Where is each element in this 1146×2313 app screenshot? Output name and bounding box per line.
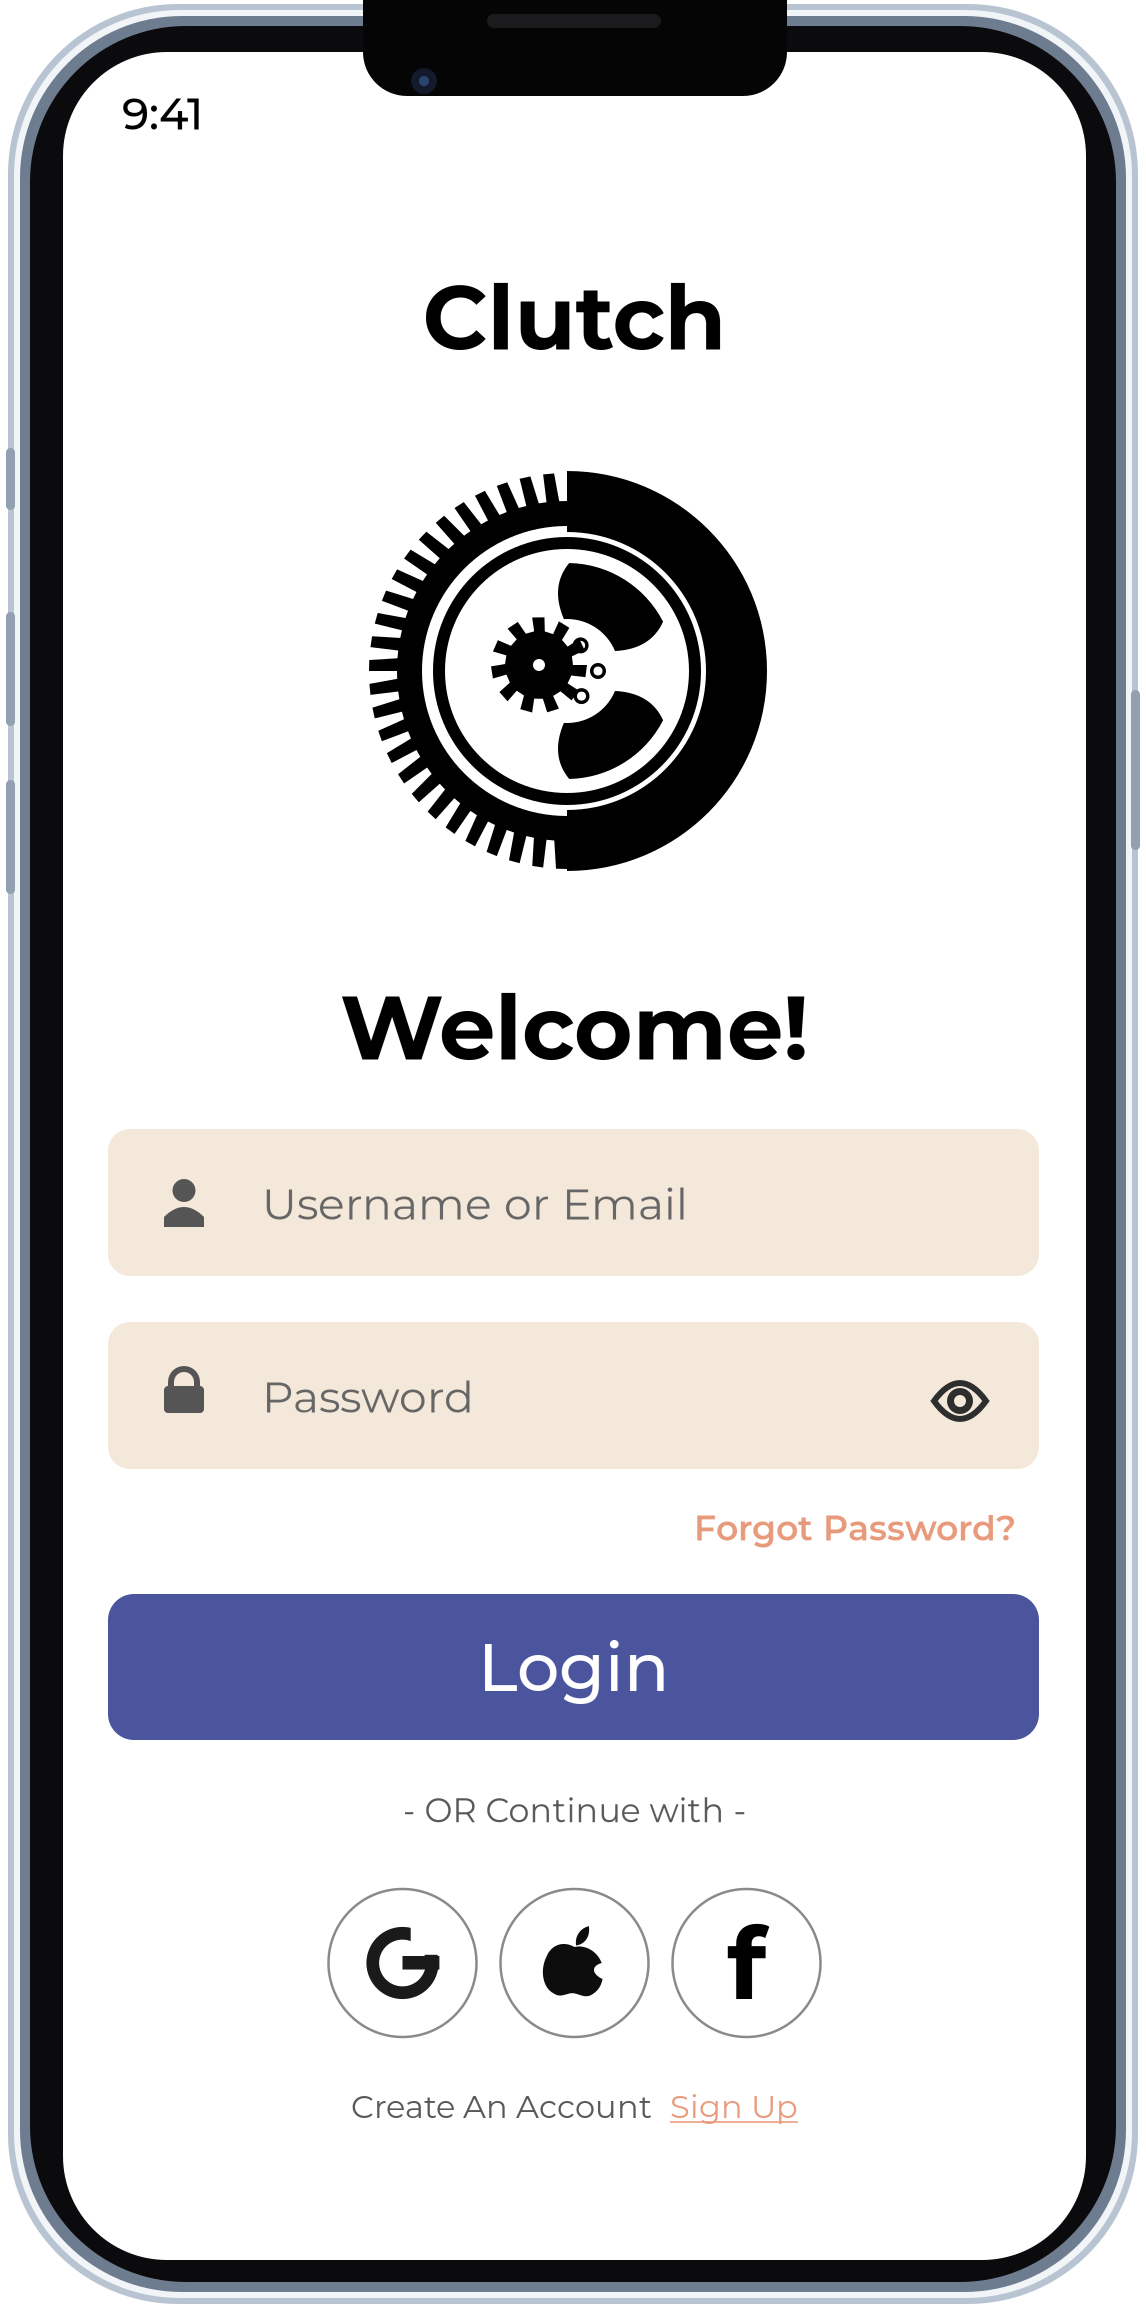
button[interactable]: Forgot Password? <box>694 1507 1016 1549</box>
staticText: f <box>727 1901 766 2025</box>
button[interactable]: Sign Up <box>670 2087 798 2126</box>
staticText: Username or Email <box>262 1177 688 1231</box>
button[interactable]: Continue with Google <box>328 1889 476 2037</box>
button[interactable]: Continue with Apple <box>500 1889 648 2037</box>
staticText: Sign Up <box>670 2087 798 2126</box>
staticText: 9:41 <box>122 87 203 141</box>
staticText: Welcome! <box>340 973 809 1082</box>
staticText: Clutch <box>422 263 726 372</box>
button[interactable]: Login <box>108 1594 1039 1740</box>
staticText: Password <box>262 1370 474 1424</box>
button[interactable]: Continue with Facebook <box>672 1889 820 2037</box>
staticText: Forgot Password? <box>694 1507 1016 1549</box>
staticText: Create An Account <box>351 2087 652 2126</box>
staticText: - OR Continue with - <box>402 1790 746 1831</box>
staticText: Login <box>478 1626 669 1708</box>
button[interactable]: Show password <box>918 1364 1002 1438</box>
